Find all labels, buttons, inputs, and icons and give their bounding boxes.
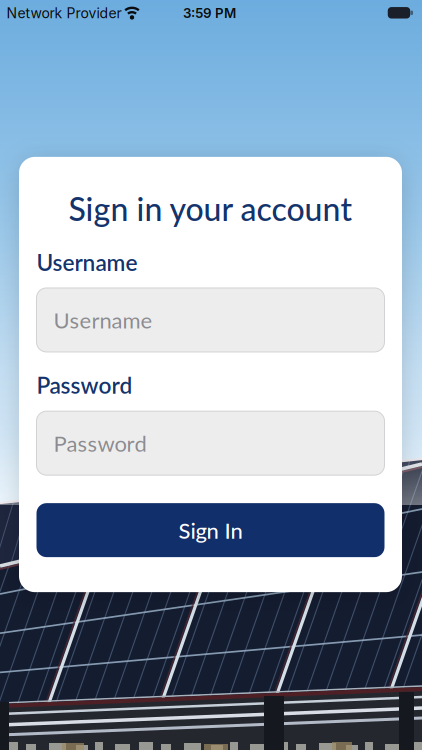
staticText: Password <box>53 430 146 456</box>
staticText: Network Provider <box>6 5 121 22</box>
staticText: Sign In <box>178 517 242 543</box>
button[interactable]: Sign In <box>36 503 384 557</box>
staticText: 3:59 PM <box>183 5 236 21</box>
staticText: Username <box>53 307 152 333</box>
staticText: Username <box>36 249 137 276</box>
staticText: Sign in your account <box>68 189 352 228</box>
staticText: Password <box>36 371 132 399</box>
